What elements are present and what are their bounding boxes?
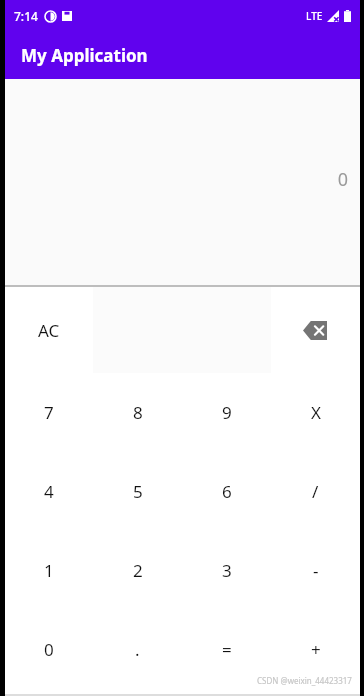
button[interactable]: = bbox=[182, 610, 271, 689]
staticText: 9 bbox=[222, 401, 232, 424]
button[interactable]: 8 bbox=[93, 373, 182, 452]
staticText: 1 bbox=[44, 559, 54, 582]
button[interactable]: 4 bbox=[5, 452, 93, 531]
button[interactable]: + bbox=[271, 610, 360, 689]
button[interactable]: 0 bbox=[5, 610, 93, 689]
staticText: 7:14 bbox=[14, 8, 38, 24]
staticText: 5 bbox=[133, 480, 143, 503]
button[interactable]: 1 bbox=[5, 531, 93, 610]
staticText: 8 bbox=[133, 401, 143, 424]
button[interactable]: 6 bbox=[182, 452, 271, 531]
staticText: 0 bbox=[44, 638, 54, 661]
button[interactable]: X bbox=[271, 373, 360, 452]
staticText: CSDN @weixin_44423317 bbox=[257, 675, 352, 686]
staticText: 4 bbox=[44, 480, 54, 503]
staticText: / bbox=[312, 480, 319, 503]
staticText: X bbox=[311, 401, 321, 424]
button[interactable]: / bbox=[271, 452, 360, 531]
staticText: My Application bbox=[21, 44, 148, 67]
staticText: - bbox=[313, 559, 319, 582]
staticText: 7 bbox=[44, 401, 54, 424]
staticText: AC bbox=[38, 319, 60, 342]
staticText: = bbox=[222, 638, 232, 661]
button[interactable]: AC bbox=[5, 287, 93, 373]
button[interactable]: - bbox=[271, 531, 360, 610]
button[interactable]: Backspace bbox=[271, 287, 360, 373]
staticText: 6 bbox=[222, 480, 232, 503]
button[interactable]: 9 bbox=[182, 373, 271, 452]
button[interactable]: 3 bbox=[182, 531, 271, 610]
button[interactable]: 7 bbox=[5, 373, 93, 452]
staticText: 3 bbox=[222, 559, 232, 582]
staticText: 0 bbox=[337, 167, 348, 192]
staticText: . bbox=[135, 638, 140, 661]
staticText: + bbox=[311, 638, 321, 661]
staticText: 2 bbox=[133, 559, 143, 582]
button[interactable]: 5 bbox=[93, 452, 182, 531]
staticText: LTE bbox=[306, 9, 323, 23]
button[interactable]: 2 bbox=[93, 531, 182, 610]
button[interactable]: . bbox=[93, 610, 182, 689]
